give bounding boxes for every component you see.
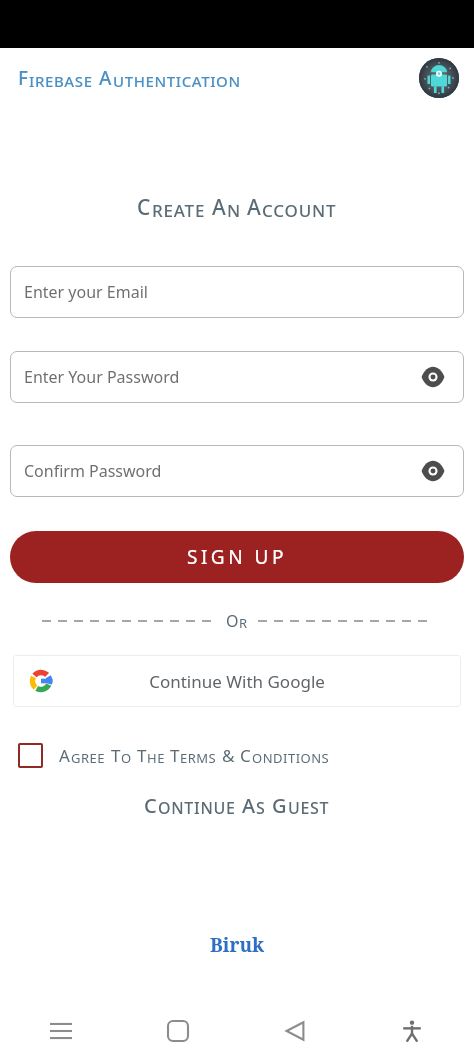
staticText: C <box>137 193 152 222</box>
button[interactable]: Recents <box>39 1009 83 1053</box>
staticText: REATE <box>152 199 206 222</box>
staticText: GREE <box>71 749 106 767</box>
staticText: N <box>227 199 241 222</box>
staticText: ERMS <box>180 749 217 767</box>
staticText: A <box>212 193 227 222</box>
staticText: ONDITIONS <box>252 749 330 767</box>
staticText: G <box>272 792 288 819</box>
staticText: A <box>242 792 256 819</box>
staticText: Continue With Google <box>149 670 325 693</box>
staticText: A <box>247 193 262 222</box>
button[interactable]: SIGN UP <box>10 531 464 583</box>
staticText: ONTINUE <box>158 797 236 819</box>
button[interactable]: C <box>0 792 474 819</box>
staticText: Confirm Password <box>24 460 162 482</box>
button[interactable]: Enter your Email <box>10 266 464 318</box>
button[interactable]: Accessibility <box>390 1009 434 1053</box>
staticText: UEST <box>288 797 330 819</box>
button[interactable]: A <box>18 743 330 768</box>
staticText: A <box>99 65 113 91</box>
staticText: C <box>240 744 252 767</box>
button[interactable]: Toggle password visibility <box>416 360 450 394</box>
button[interactable]: Continue With Google <box>13 655 461 707</box>
staticText: IREBASE <box>29 71 93 91</box>
button[interactable]: Home <box>156 1009 200 1053</box>
staticText: R <box>239 614 248 632</box>
staticText: F <box>18 65 29 91</box>
staticText: C <box>144 792 158 819</box>
staticText: O <box>226 610 239 632</box>
staticText: T <box>111 744 121 767</box>
staticText: T <box>170 744 180 767</box>
staticText: UTHENTICATION <box>113 71 241 91</box>
staticText: CCOUNT <box>262 199 337 222</box>
staticText: HE <box>147 749 165 767</box>
staticText: S <box>256 797 266 819</box>
staticText: Enter Your Password <box>24 366 180 388</box>
staticText: SIGN UP <box>187 544 287 570</box>
staticText: & <box>222 744 235 767</box>
button[interactable]: Confirm Password <box>10 445 464 497</box>
staticText: T <box>137 744 147 767</box>
staticText: O <box>121 749 132 767</box>
staticText: A <box>59 744 71 767</box>
button[interactable]: Back <box>273 1009 317 1053</box>
button[interactable]: Toggle password visibility <box>416 454 450 488</box>
staticText: Biruk <box>210 932 265 958</box>
button[interactable]: Profile <box>418 57 460 99</box>
staticText: Enter your Email <box>24 281 148 303</box>
button[interactable]: Enter Your Password <box>10 351 464 403</box>
